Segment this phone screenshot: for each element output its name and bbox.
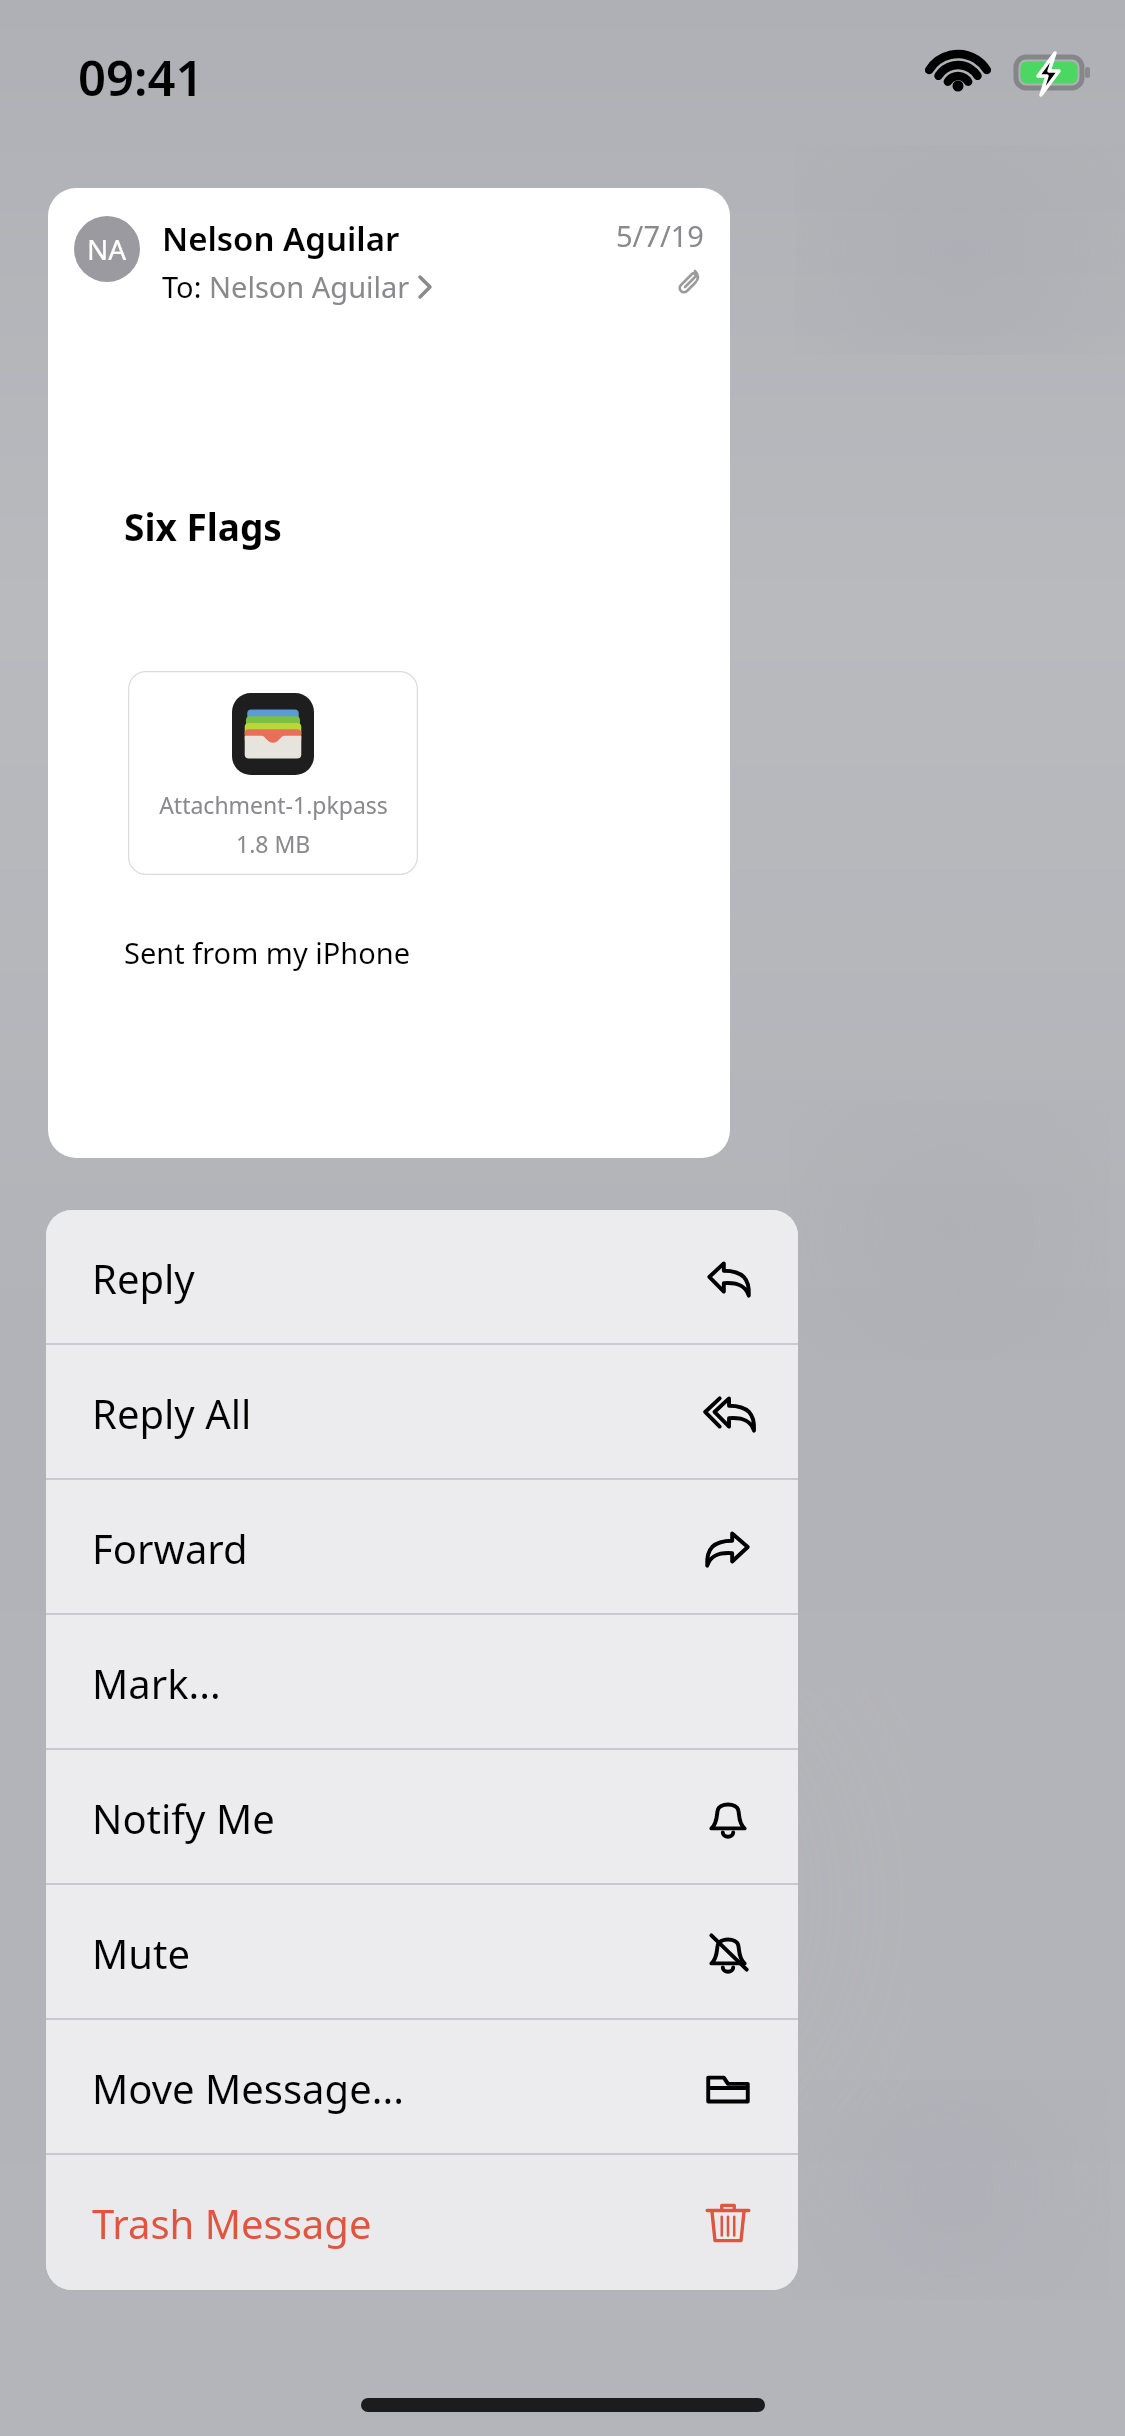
button[interactable]: Trash Message — [46, 2155, 798, 2290]
button[interactable]: Attachment-1.pkpass — [128, 671, 418, 875]
staticText: 5/7/19 — [616, 216, 704, 255]
button[interactable]: Forward — [46, 1480, 798, 1615]
staticText: Move Message... — [92, 2061, 404, 2115]
staticText: Trash Message — [92, 2196, 372, 2250]
staticText: Sent from my iPhone — [124, 933, 410, 972]
button[interactable]: Reply All — [46, 1345, 798, 1480]
staticText: Reply All — [92, 1386, 252, 1440]
staticText: Nelson Aguilar — [209, 267, 410, 306]
staticText: Forward — [92, 1521, 248, 1575]
staticText: To: — [162, 267, 209, 306]
button[interactable]: Move Message... — [46, 2020, 798, 2155]
staticText: Six Flags — [124, 501, 282, 551]
staticText: Reply — [92, 1251, 195, 1305]
staticText: 1.8 MB — [236, 828, 311, 859]
other: Mute — [702, 1927, 754, 1979]
staticText: Nelson Aguilar — [162, 216, 400, 261]
staticText: Mark... — [92, 1656, 221, 1710]
staticText: Notify Me — [92, 1791, 275, 1845]
staticText: Attachment-1.pkpass — [159, 789, 388, 820]
button[interactable]: Mute — [46, 1885, 798, 2020]
staticText: Mute — [92, 1926, 190, 1980]
button[interactable]: Reply — [46, 1210, 798, 1345]
other: Notify Me — [702, 1792, 754, 1844]
other: Move Message... — [702, 2062, 754, 2114]
other: Reply — [702, 1252, 754, 1304]
staticText: 09:41 — [78, 44, 204, 111]
button[interactable]: Notify Me — [46, 1750, 798, 1885]
other: Trash Message — [702, 2197, 754, 2249]
button[interactable]: Mark... — [46, 1615, 798, 1750]
other: Reply All — [702, 1387, 754, 1439]
staticText: NA — [87, 230, 127, 268]
other: Forward — [702, 1522, 754, 1574]
